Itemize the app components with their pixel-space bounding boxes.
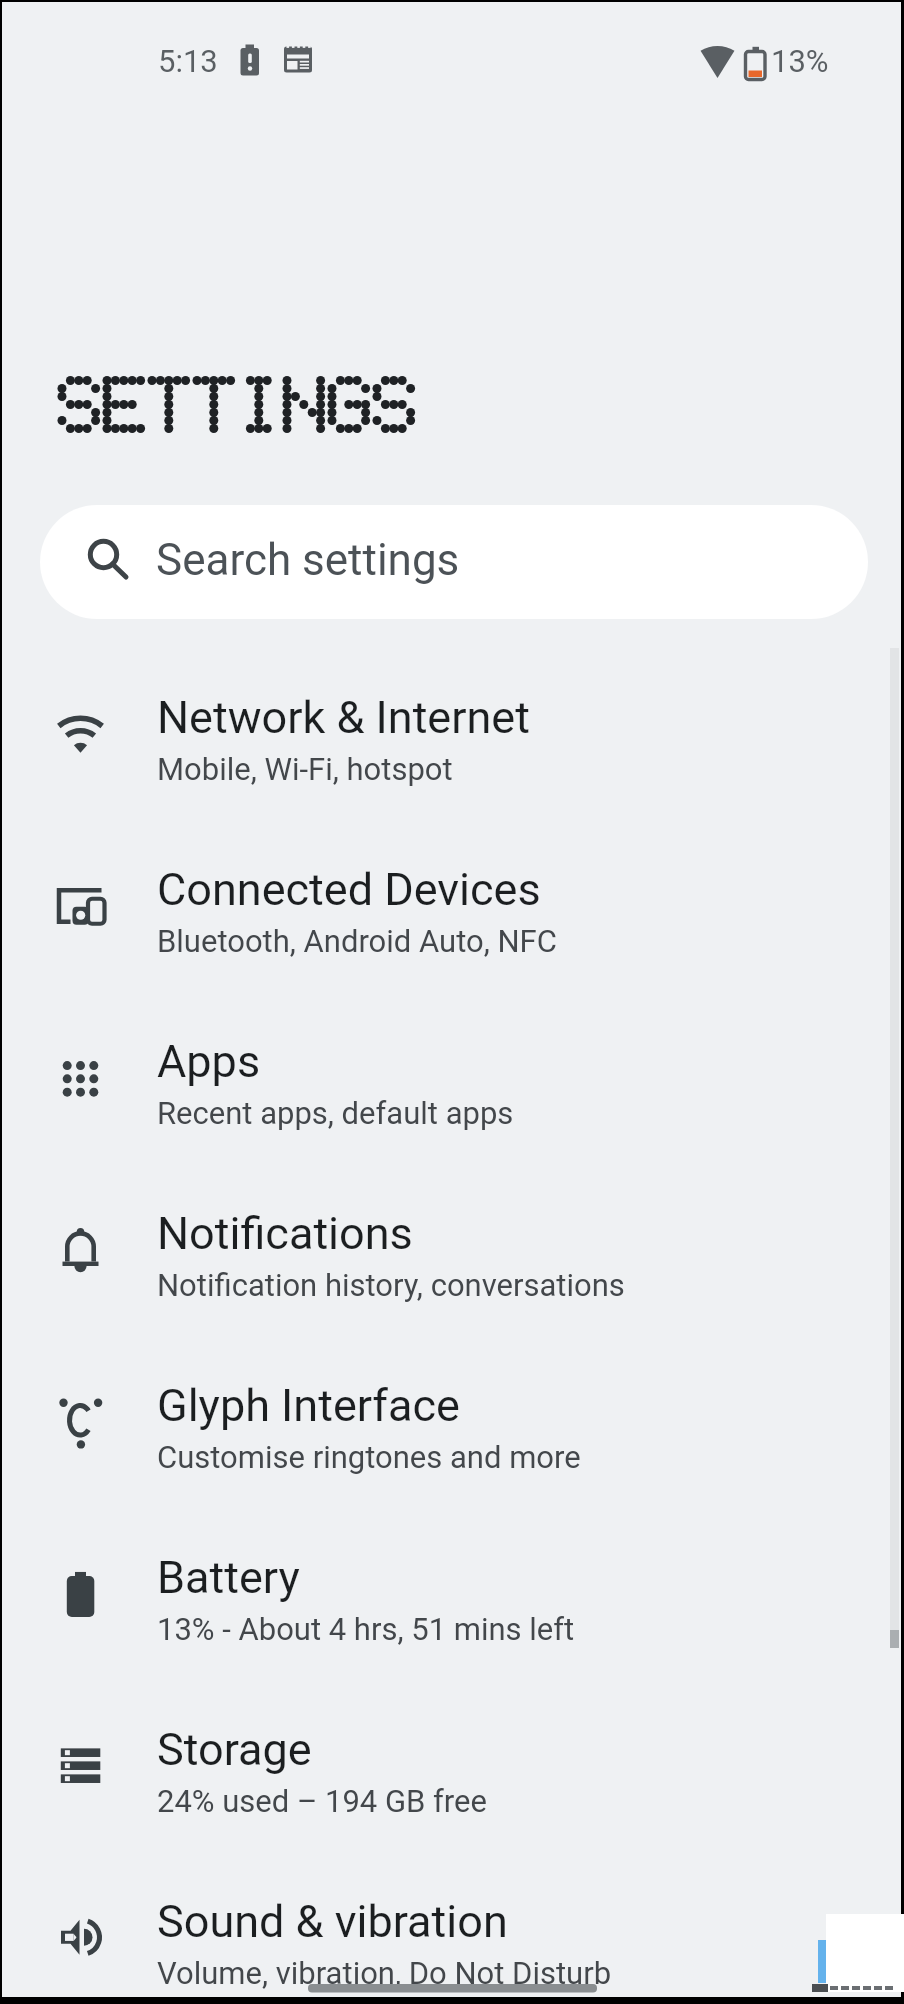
staticText: Recent apps, default apps (157, 1095, 514, 1131)
staticText: 24% used – 194 GB free (157, 1783, 487, 1819)
staticText: Bluetooth, Android Auto, NFC (157, 923, 557, 959)
staticText: Notification history, conversations (157, 1267, 625, 1303)
staticText: Volume, vibration, Do Not Disturb (157, 1955, 612, 1991)
button[interactable]: Notifications (2, 1165, 901, 1337)
button[interactable]: Apps (2, 993, 901, 1165)
button[interactable] (40, 505, 868, 619)
button[interactable]: Storage (2, 1681, 901, 1853)
staticText: Apps (157, 1035, 261, 1088)
button[interactable]: Sound & vibration (2, 1853, 901, 2004)
button[interactable]: Network & Internet (2, 649, 901, 821)
staticText: Connected Devices (157, 863, 541, 916)
button[interactable]: Connected Devices (2, 821, 901, 993)
staticText: Network & Internet (157, 691, 530, 744)
button[interactable]: Battery (2, 1509, 901, 1681)
staticText: 5:13 (158, 43, 218, 79)
staticText: Storage (157, 1723, 312, 1776)
staticText: 13% - About 4 hrs, 51 mins left (157, 1611, 575, 1647)
staticText: 13% (771, 43, 829, 79)
staticText: Glyph Interface (157, 1379, 460, 1432)
staticText: Customise ringtones and more (157, 1439, 581, 1475)
staticText: Search settings (156, 534, 460, 586)
staticText: Sound & vibration (157, 1895, 508, 1948)
staticText: Mobile, Wi-Fi, hotspot (157, 751, 453, 787)
staticText: Battery (157, 1551, 300, 1604)
button[interactable]: Glyph Interface (2, 1337, 901, 1509)
staticText: Notifications (157, 1207, 413, 1260)
